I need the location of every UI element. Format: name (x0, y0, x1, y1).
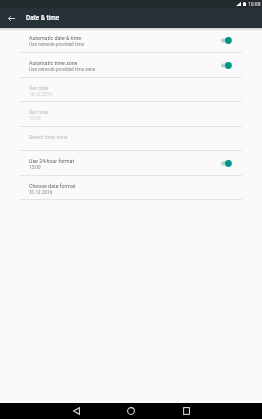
staticText: Use network-provided time zone (29, 67, 96, 72)
button[interactable]: Automatic time zone (0, 53, 262, 78)
staticText: Automatic date & time (29, 35, 82, 41)
button[interactable]: Set date (0, 78, 262, 102)
staticText: Use 24-hour format (29, 158, 75, 164)
staticText: Automatic time zone (29, 60, 78, 66)
staticText: 10:08 (248, 1, 261, 7)
button[interactable]: Choose date format (0, 176, 262, 200)
staticText: Date & time (26, 14, 60, 22)
button[interactable]: Navigate up (0, 8, 20, 28)
staticText: 16.12.2016 (29, 92, 53, 97)
button[interactable]: Use 24-hour format (0, 151, 262, 176)
button[interactable]: Back (65, 403, 87, 419)
staticText: 10:08 (29, 116, 41, 121)
button[interactable]: Select time zone (0, 127, 262, 151)
button[interactable]: Recent apps (175, 403, 197, 419)
staticText: Choose date format (29, 183, 76, 189)
staticText: Select time zone (29, 134, 68, 140)
staticText: Use network-provided time (29, 42, 85, 47)
button[interactable]: Home (120, 403, 142, 419)
staticText: 31.12.2016 (29, 190, 53, 195)
button[interactable]: Automatic date & time (0, 28, 262, 53)
staticText: Set date (29, 85, 49, 91)
staticText: 13:00 (29, 165, 41, 170)
staticText: Set time (29, 109, 49, 115)
button[interactable]: Set time (0, 102, 262, 127)
